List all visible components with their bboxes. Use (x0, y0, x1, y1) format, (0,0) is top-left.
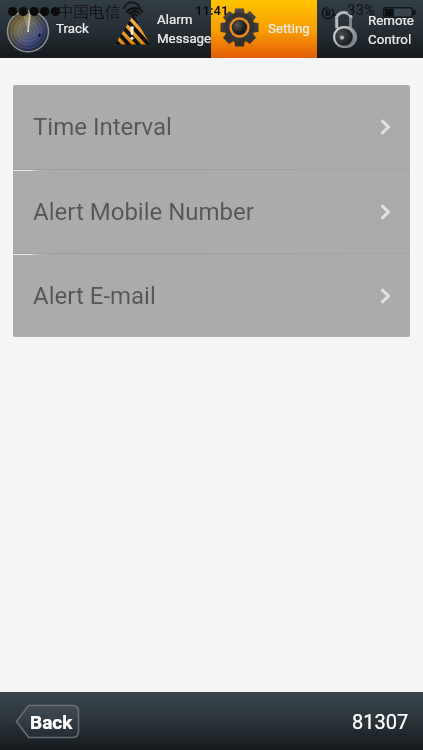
staticText: 中国电信 (58, 2, 120, 22)
button[interactable]: Alert E-mail (13, 255, 410, 337)
staticText: Time Interval (33, 113, 380, 141)
staticText: 81307 (352, 710, 409, 733)
button[interactable]: Time Interval (13, 85, 410, 169)
button[interactable]: Track (0, 0, 105, 58)
staticText: Alarm Message (157, 12, 212, 46)
staticText: Remote Control (368, 13, 414, 47)
button[interactable]: Remote Control (317, 0, 423, 58)
button[interactable]: Back (15, 704, 80, 739)
staticText: Track (56, 21, 89, 37)
staticText: Setting (268, 21, 310, 37)
staticText: Alert Mobile Number (33, 198, 380, 226)
button[interactable]: Setting (211, 0, 317, 58)
button[interactable]: Alert Mobile Number (13, 171, 410, 253)
button[interactable]: Alarm Message (105, 0, 211, 58)
staticText: 33% (347, 1, 375, 19)
staticText: 11:41 (195, 3, 229, 18)
staticText: Back (30, 711, 73, 733)
staticText: Alert E-mail (33, 282, 380, 310)
